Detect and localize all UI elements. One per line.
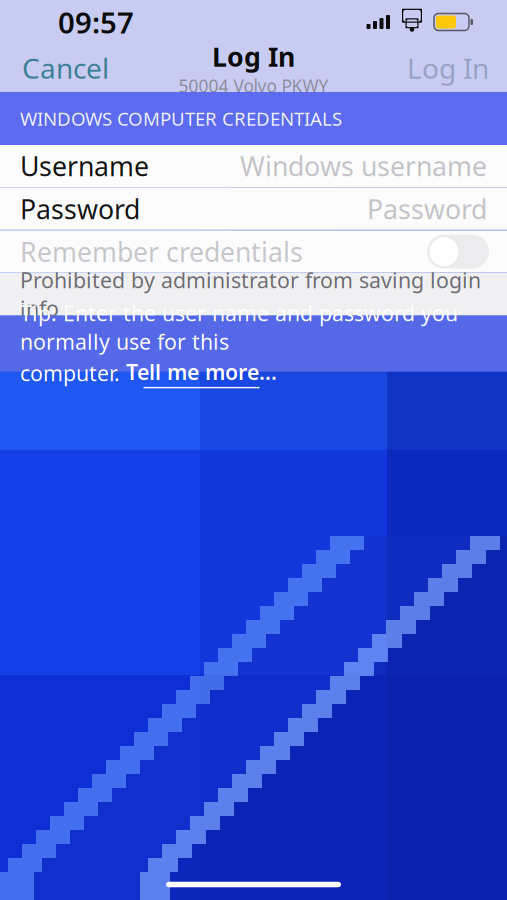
staticText: WINDOWS COMPUTER CREDENTIALS [20,106,342,131]
staticText: Remember credentials [20,234,303,269]
button[interactable]: Remember credentials, off, disabled [0,231,507,273]
button[interactable]: Password [0,188,507,230]
staticText: Cancel [22,49,109,87]
staticText: 50004 Volvo PKWY [178,74,328,97]
staticText: Tell me more... [126,358,277,386]
staticText: Log In [212,39,295,74]
staticText: Password [20,191,140,226]
staticText: Prohibited by administrator from saving … [20,266,481,322]
staticText: Tip: Enter the user name and password yo… [20,299,458,356]
button[interactable]: Log In [389,44,507,92]
staticText: computer. [20,359,126,387]
staticText: 09:57 [58,2,134,41]
staticText: Username [20,148,149,184]
staticText: Password [367,191,487,226]
button[interactable]: Tell me more... [126,358,277,388]
button[interactable]: Username [0,145,507,187]
staticText: Log In [407,49,489,87]
staticText: Windows username [240,148,487,184]
button[interactable]: Cancel [0,44,131,92]
